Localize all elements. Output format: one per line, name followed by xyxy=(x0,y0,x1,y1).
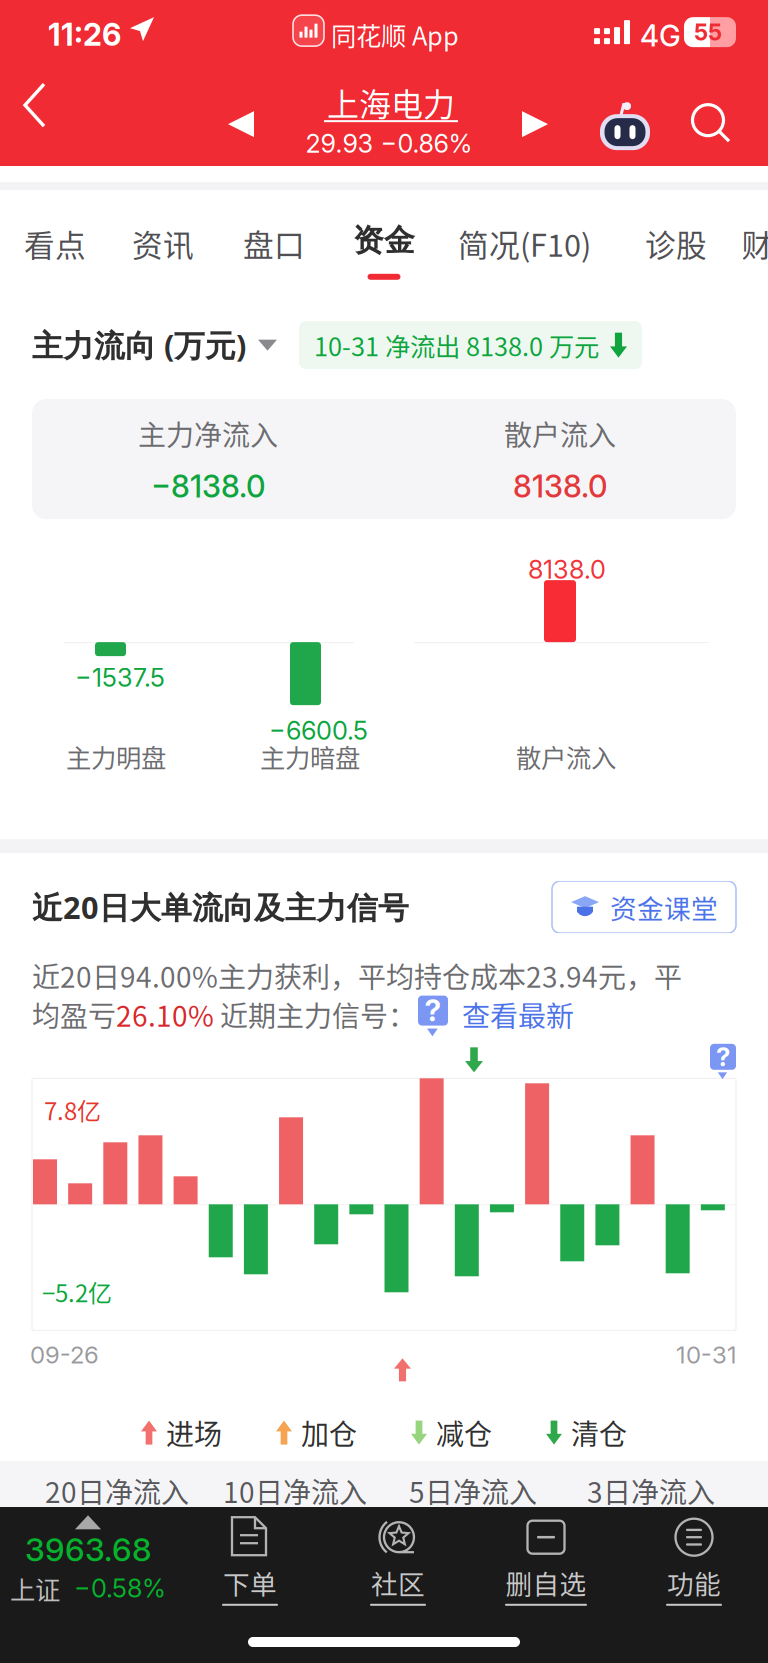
staticText: ? xyxy=(424,993,441,1028)
staticText: 盘口 xyxy=(243,221,305,265)
button[interactable]: Previous stock xyxy=(208,82,274,166)
button[interactable]: Back xyxy=(22,82,92,166)
staticText: 3日净流入 xyxy=(587,1471,715,1511)
button[interactable]: 功能 xyxy=(620,1507,768,1615)
button[interactable]: 资讯 xyxy=(132,190,194,295)
staticText: 26.10% xyxy=(116,994,214,1035)
staticText: 10-31 净流出 8138.0 万元 xyxy=(314,327,599,363)
staticText: 主力明盘 xyxy=(66,738,166,775)
staticText: 29.93 −0.86% xyxy=(305,128,472,159)
staticText: 主力暗盘 xyxy=(260,738,360,775)
staticText: 财 xyxy=(741,221,768,265)
staticText: 主力流向 (万元) xyxy=(32,324,246,366)
staticText: 10-31 xyxy=(676,1340,737,1369)
button[interactable]: 减仓 xyxy=(411,1412,492,1453)
button[interactable]: Search xyxy=(679,82,745,166)
staticText: 下单 xyxy=(223,1563,277,1602)
staticText: 进场 xyxy=(166,1412,222,1453)
staticText: 10日净流入 xyxy=(223,1471,367,1511)
staticText: 减仓 xyxy=(436,1412,492,1453)
staticText: 近20日94.00%主力获利，平均持仓成本23.94元，平 xyxy=(32,955,682,996)
button[interactable]: 社区 xyxy=(324,1507,472,1615)
staticText: 资金课堂 xyxy=(610,888,718,926)
staticText: 均盈亏 xyxy=(32,994,116,1035)
button[interactable]: 简况(F10) xyxy=(458,190,591,295)
button[interactable]: 查看最新 xyxy=(448,994,574,1035)
button[interactable]: 上海电力 xyxy=(318,82,464,166)
button[interactable]: Next stock xyxy=(502,82,568,166)
staticText: ? xyxy=(716,1041,730,1072)
staticText: 加仓 xyxy=(301,1412,357,1453)
staticText: 20日净流入 xyxy=(45,1471,189,1511)
staticText: −1537.5 xyxy=(75,662,165,693)
staticText: −0.58% xyxy=(74,1573,166,1604)
staticText: 功能 xyxy=(667,1563,721,1602)
staticText: 7.8亿 xyxy=(44,1092,101,1127)
button[interactable]: 3日净流入 xyxy=(562,1461,740,1521)
staticText: 8138.0 xyxy=(513,468,607,505)
button[interactable]: 20日净流入 xyxy=(28,1461,206,1521)
staticText: 11:26 xyxy=(48,16,121,53)
button[interactable]: 3963.68 xyxy=(0,1507,176,1615)
button[interactable]: 资金课堂 xyxy=(552,881,736,933)
staticText: 3963.68 xyxy=(25,1530,151,1569)
button[interactable]: 进场 xyxy=(141,1412,222,1453)
button[interactable]: 主力流向 (万元) xyxy=(32,317,277,373)
button[interactable]: 看点 xyxy=(24,190,86,295)
button[interactable]: 清仓 xyxy=(546,1412,627,1453)
staticText: 55 xyxy=(694,18,722,46)
staticText: 资讯 xyxy=(132,221,194,265)
staticText: 看点 xyxy=(24,221,86,265)
button[interactable]: 10-31 净流出 8138.0 万元 xyxy=(299,321,642,369)
staticText: 8138.0 xyxy=(528,554,606,585)
staticText: 09-26 xyxy=(30,1340,99,1369)
button[interactable]: 财 xyxy=(740,190,768,295)
staticText: −8138.0 xyxy=(151,468,265,505)
staticText: 简况(F10) xyxy=(458,221,591,265)
staticText: 同花顺 App xyxy=(331,16,459,53)
button[interactable]: 10日净流入 xyxy=(206,1461,384,1521)
staticText: −5.2亿 xyxy=(42,1274,112,1309)
staticText: 社区 xyxy=(371,1563,425,1602)
staticText: 上证 xyxy=(10,1570,60,1607)
button[interactable]: 下单 xyxy=(176,1507,324,1615)
button[interactable]: 删自选 xyxy=(472,1507,620,1615)
staticText: 删自选 xyxy=(505,1563,586,1602)
button[interactable]: 5日净流入 xyxy=(384,1461,562,1521)
button[interactable]: 诊股 xyxy=(645,190,707,295)
staticText: −6600.5 xyxy=(269,715,368,746)
button[interactable]: AI assistant xyxy=(592,84,658,168)
staticText: 上海电力 xyxy=(327,79,455,125)
staticText: 5日净流入 xyxy=(409,1471,537,1511)
staticText: 清仓 xyxy=(571,1412,627,1453)
staticText: 散户流入 xyxy=(504,413,616,454)
staticText: 散户流入 xyxy=(516,738,616,775)
button[interactable]: 加仓 xyxy=(276,1412,357,1453)
staticText: 近期主力信号： xyxy=(214,994,416,1035)
staticText: 资金 xyxy=(353,221,415,260)
button[interactable]: 盘口 xyxy=(243,190,305,295)
staticText: 查看最新 xyxy=(462,994,574,1035)
staticText: 近20日大单流向及主力信号 xyxy=(32,886,409,928)
staticText: 4G xyxy=(640,18,681,54)
staticText: 诊股 xyxy=(645,221,707,265)
button[interactable]: 资金 xyxy=(353,190,415,295)
staticText: 主力净流入 xyxy=(138,413,278,454)
